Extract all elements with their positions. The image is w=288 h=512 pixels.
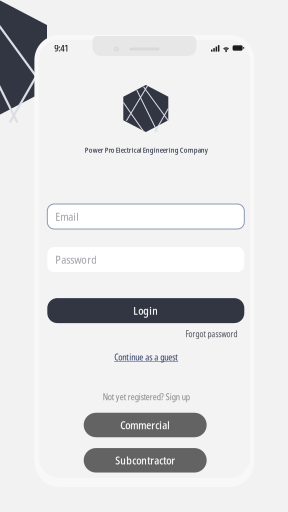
staticText: Not yet registered? Sign up [103,391,190,403]
button[interactable]: Subcontractor [84,448,207,472]
staticText: Password [55,252,97,267]
button[interactable]: Email [47,204,244,229]
staticText: Login [133,303,158,318]
staticText: Forgot password [185,329,237,340]
button[interactable]: Forgot password [185,329,237,340]
staticText: Commercial [120,418,170,432]
staticText: Power Pro Electrical Engineering Company [85,145,208,155]
button[interactable]: Commercial [84,413,207,437]
staticText: Subcontractor [115,453,175,467]
button[interactable]: Continue as a guest [114,351,178,363]
staticText: 9:41 [54,42,68,54]
staticText: Continue as a guest [114,351,178,363]
button[interactable]: Login [47,298,244,323]
staticText: Email [55,209,79,224]
button[interactable]: Password [47,247,244,272]
